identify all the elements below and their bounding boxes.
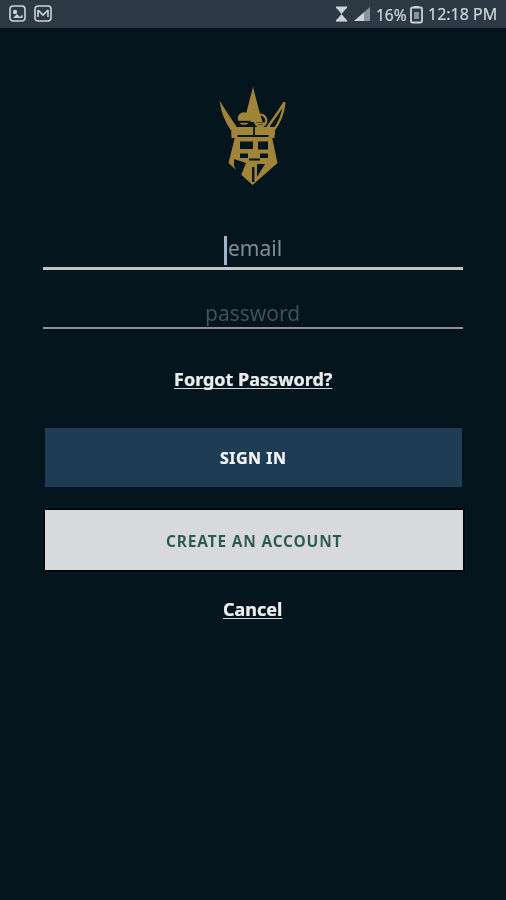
staticText: password	[205, 299, 301, 328]
staticText: Cancel	[223, 597, 283, 622]
staticText: 16%	[376, 4, 407, 25]
button[interactable]: SIGN IN	[45, 428, 462, 487]
staticText: SIGN IN	[220, 447, 287, 469]
staticText: 12:18 PM	[428, 3, 498, 25]
staticText: email	[228, 234, 283, 263]
staticText: CREATE AN ACCOUNT	[166, 530, 343, 551]
button[interactable]: Cancel	[223, 597, 283, 622]
button[interactable]: Forgot Password?	[174, 367, 333, 392]
button[interactable]: CREATE AN ACCOUNT	[45, 510, 463, 570]
staticText: Forgot Password?	[174, 367, 333, 392]
